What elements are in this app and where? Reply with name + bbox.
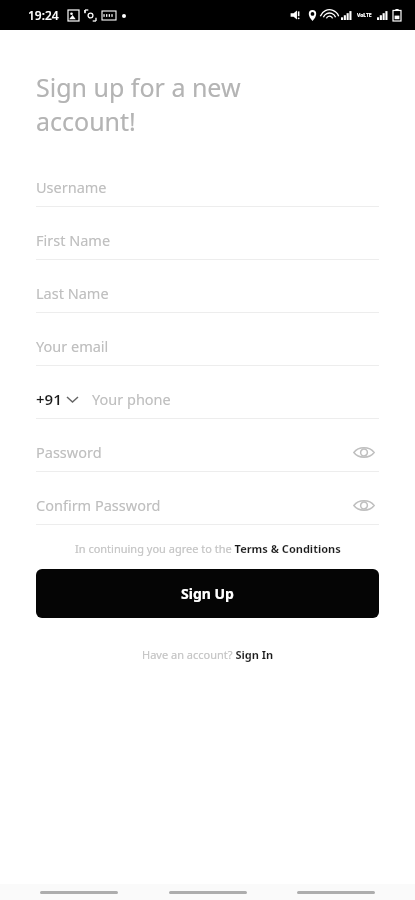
staticText: Username [36, 177, 379, 197]
staticText: 19:24 [28, 7, 59, 23]
button[interactable]: Home [169, 891, 247, 894]
button[interactable]: Show password [349, 437, 379, 467]
button[interactable]: +91 [36, 389, 92, 409]
button[interactable]: Show confirm password [349, 490, 379, 520]
staticText: Your email [36, 336, 379, 356]
staticText: Your phone [92, 389, 379, 409]
staticText: Sign up for a new account! [36, 70, 241, 138]
button[interactable]: Last Name [36, 274, 379, 313]
button[interactable]: Recents [297, 891, 375, 894]
button[interactable]: First Name [36, 221, 379, 260]
staticText: VoLTE [357, 12, 372, 19]
staticText: Confirm Password [36, 495, 349, 515]
button[interactable]: Have an account? Sign In [142, 647, 274, 662]
staticText: Sign Up [181, 584, 234, 603]
button[interactable]: Back [40, 891, 118, 894]
button[interactable]: +91 [36, 380, 379, 419]
button[interactable]: In continuing you agree to the Terms & C… [75, 541, 341, 556]
button[interactable]: Sign Up [36, 569, 379, 618]
staticText: Last Name [36, 283, 379, 303]
button[interactable]: Your email [36, 327, 379, 366]
staticText: +91 [36, 389, 62, 409]
staticText: Password [36, 442, 349, 462]
staticText: First Name [36, 230, 379, 250]
button[interactable]: Username [36, 168, 379, 207]
button[interactable]: Password [36, 433, 379, 472]
button[interactable]: Confirm Password [36, 486, 379, 525]
